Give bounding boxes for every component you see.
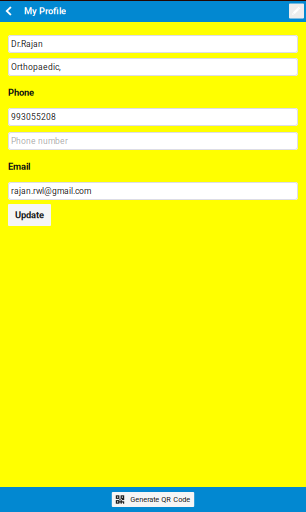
staticText: Update (15, 209, 44, 220)
staticText: rajan.rwl@gmail.com (11, 186, 91, 196)
staticText: Dr.Rajan (11, 39, 43, 49)
staticText: Orthopaedic, (11, 62, 61, 72)
staticText: Phone (8, 87, 34, 98)
staticText: Email (8, 161, 30, 172)
staticText: Phone number (11, 136, 68, 146)
button[interactable]: Update (8, 204, 51, 226)
button[interactable]: Edit profile (289, 3, 304, 18)
button[interactable]: Back (0, 0, 17, 22)
staticText: My Profile (24, 5, 66, 16)
button[interactable]: Generate QR Code (112, 492, 194, 507)
staticText: 993055208 (11, 112, 56, 122)
staticText: Generate QR Code (130, 495, 190, 504)
